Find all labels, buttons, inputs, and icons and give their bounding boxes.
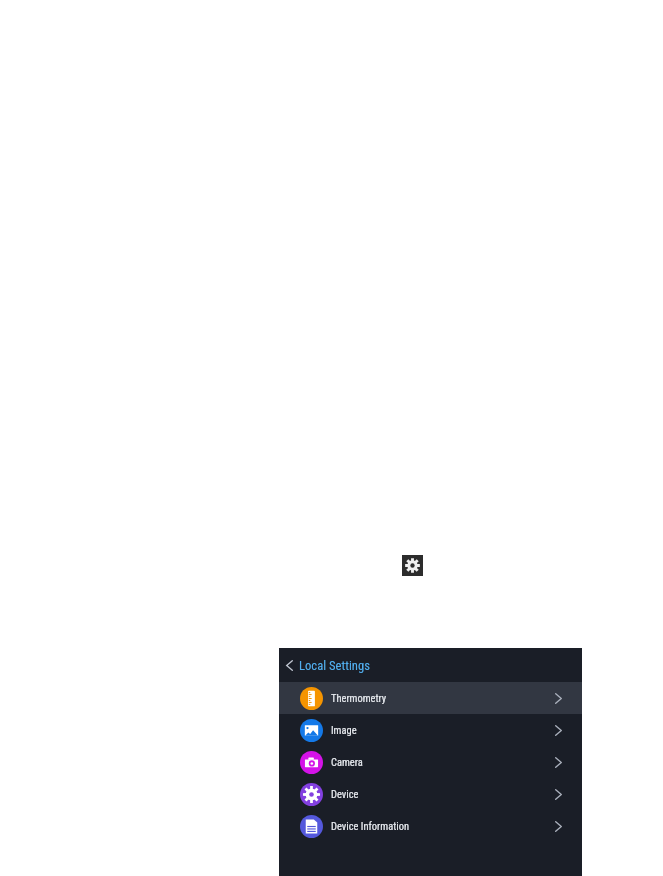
staticText: Image: [331, 724, 357, 736]
staticText: Camera: [331, 756, 363, 768]
staticText: Local Settings: [299, 658, 370, 673]
staticText: Thermometry: [331, 692, 387, 704]
button[interactable]: Settings: [402, 555, 423, 576]
staticText: Device Information: [331, 820, 410, 832]
button[interactable]: Back: [280, 656, 299, 675]
button[interactable]: Camera: [279, 746, 582, 778]
button[interactable]: Device: [279, 778, 582, 810]
staticText: Device: [331, 788, 359, 800]
button[interactable]: Device Information: [279, 810, 582, 842]
button[interactable]: Thermometry: [279, 682, 582, 714]
button[interactable]: Image: [279, 714, 582, 746]
